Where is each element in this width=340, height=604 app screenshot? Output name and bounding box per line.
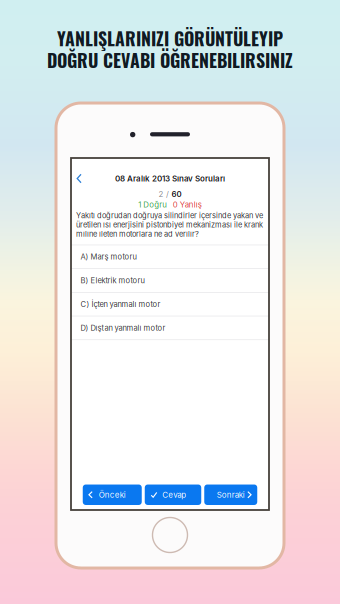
staticText: / [166,189,169,199]
staticText: B) Elektrik motoru [80,276,144,285]
staticText: 60 [172,189,182,199]
staticText: DOĞRU CEVABI ÖĞRENEBILIRSINIZ [47,47,293,73]
button[interactable]: Cevap [145,484,201,505]
staticText: 2 [158,189,163,199]
button[interactable]: Sonraki [204,484,257,505]
staticText: 08 Aralık 2013 Sınav Soruları [115,174,225,183]
staticText: C) İçten yanmalı motor [80,300,160,309]
button[interactable]: A) Marş motoru [71,245,269,269]
staticText: Sonraki [217,490,245,500]
staticText: Önceki [99,490,126,500]
button[interactable]: B) Elektrik motoru [71,269,269,293]
staticText: D) Dıştan yanmalı motor [80,323,165,332]
button[interactable]: Önceki [83,484,142,505]
staticText: A) Marş motoru [80,252,136,261]
staticText: YANLIŞLARINIZI GÖRÜNTÜLEYIP [57,25,283,51]
staticText: Yakıtı doğrudan doğruya silindirler içer… [76,211,263,220]
staticText: miline ileten motorlara ne ad verilir? [76,229,199,238]
staticText: 0 Yanlış [173,200,202,209]
button[interactable]: Back [71,169,87,188]
staticText: üretilen ısı enerjisini pistonbiyel meka… [76,220,263,229]
button[interactable]: C) İçten yanmalı motor [71,293,269,316]
button[interactable]: D) Dıştan yanmalı motor [71,316,269,340]
staticText: 1 Doğru [138,200,167,209]
staticText: Cevap [162,490,186,500]
